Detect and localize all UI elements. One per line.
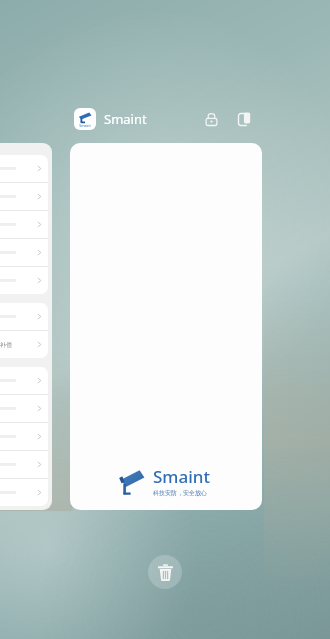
button[interactable]: Lock task [199,107,223,131]
button[interactable]: 应用开启补偿 [0,143,52,510]
staticText: Smaint [153,465,210,488]
button[interactable] [0,267,48,294]
button[interactable] [0,211,48,238]
button[interactable]: 应用开启补偿 [0,331,48,358]
button[interactable] [0,239,48,266]
button[interactable]: Split screen [232,107,256,131]
button[interactable] [0,479,48,506]
button[interactable] [0,303,48,330]
button[interactable] [0,395,48,422]
staticText: Smaint [79,123,91,128]
button[interactable] [0,367,48,394]
button[interactable] [0,155,48,182]
button[interactable]: Clear all recent tasks [148,555,182,589]
staticText: Smaint [104,110,147,128]
button[interactable]: Smaint [70,143,262,510]
button[interactable] [0,183,48,210]
button[interactable] [0,423,48,450]
staticText: 应用开启补偿 [0,341,12,349]
button[interactable] [0,451,48,478]
staticText: 科技安防，安全放心 [153,489,207,497]
